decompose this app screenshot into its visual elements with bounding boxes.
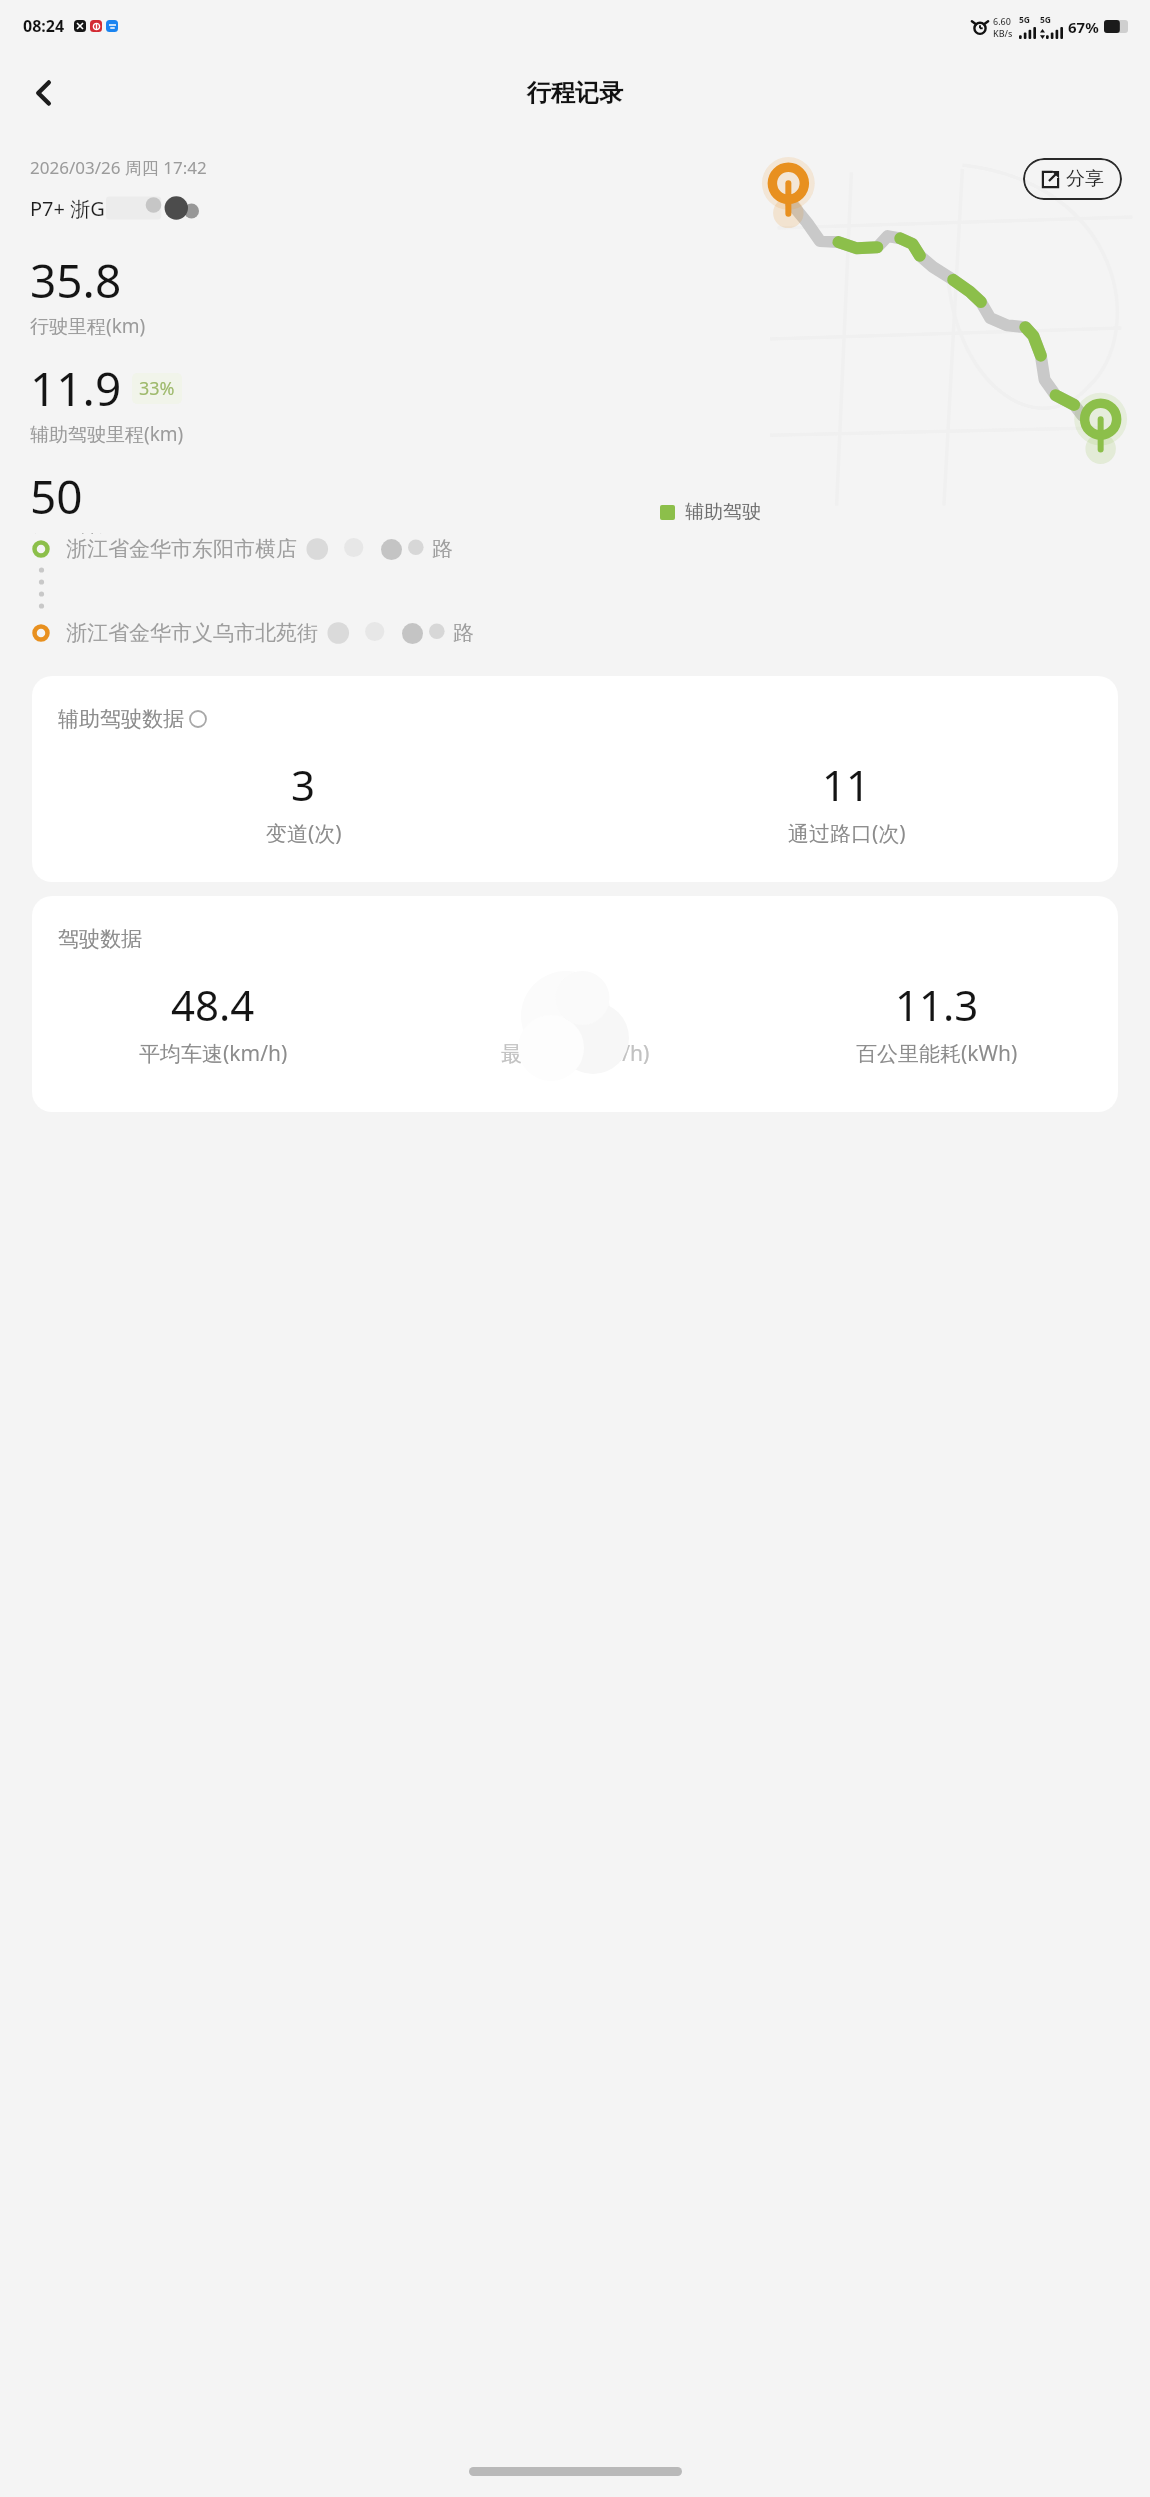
- staticText: 11.9: [30, 357, 122, 420]
- staticText: 浙江省金华市东阳市横店: [66, 536, 297, 562]
- staticText: 33%: [139, 376, 175, 401]
- staticText: 辅助驾驶数据: [58, 706, 184, 732]
- staticText: 驾驶数据: [58, 926, 142, 952]
- staticText: 路: [453, 620, 474, 646]
- staticText: 3: [291, 756, 316, 813]
- staticText: 通过路口(次): [788, 819, 906, 848]
- staticText: 35.8: [30, 249, 122, 312]
- staticText: 5G: [1019, 14, 1031, 26]
- staticText: 辅助驾驶: [685, 500, 761, 524]
- staticText: 变道(次): [266, 819, 342, 848]
- staticText: 浙江省金华市义乌市北苑街: [66, 620, 318, 646]
- staticText: 路: [432, 536, 453, 562]
- staticText: 百公里能耗(kWh): [856, 1039, 1018, 1068]
- staticText: 2026/03/26 周四 17:42: [30, 156, 207, 179]
- staticText: 行程记录: [527, 78, 623, 108]
- staticText: P7+ 浙G: [30, 195, 105, 222]
- button[interactable]: 辅助驾驶数据: [32, 676, 1118, 882]
- button[interactable]: Back: [18, 67, 70, 119]
- staticText: 5G: [1040, 14, 1052, 26]
- staticText: 分享: [1066, 167, 1104, 191]
- staticText: 50: [30, 465, 83, 528]
- staticText: 辅助驾驶里程(km): [30, 421, 184, 447]
- staticText: 平均车速(km/h): [139, 1039, 288, 1068]
- staticText: 行驶里程(km): [30, 313, 146, 339]
- button[interactable]: 驾驶数据: [32, 896, 1118, 1112]
- button[interactable]: 分享: [1023, 158, 1122, 200]
- staticText: 6.60: [993, 15, 1011, 27]
- staticText: 48.4: [171, 976, 255, 1033]
- staticText: 行程时长(min): [30, 529, 152, 534]
- staticText: 11.3: [895, 976, 979, 1033]
- staticText: 最高车速(km/h): [501, 1039, 650, 1068]
- staticText: KB/s: [993, 27, 1013, 39]
- staticText: 08:24: [23, 15, 65, 37]
- staticText: 67%: [1068, 17, 1099, 37]
- staticText: 11: [822, 756, 871, 813]
